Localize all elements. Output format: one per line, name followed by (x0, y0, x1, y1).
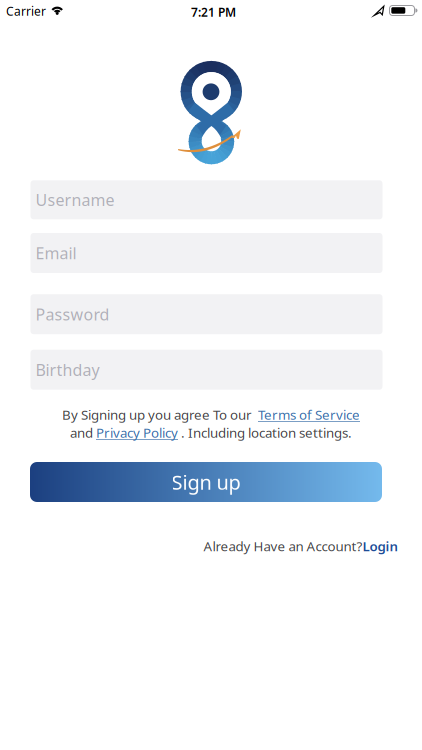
staticText: Login (362, 537, 398, 555)
button[interactable]: Terms of Service (258, 406, 360, 423)
button[interactable]: Birthday (30, 350, 382, 390)
button[interactable]: Privacy Policy (96, 424, 178, 441)
button[interactable]: Login (362, 537, 398, 555)
staticText: Privacy Policy (96, 424, 178, 441)
button[interactable]: Email (30, 233, 382, 273)
staticText: and (70, 424, 96, 441)
button[interactable]: Username (30, 180, 382, 219)
staticText: Already Have an Account? (203, 537, 362, 555)
staticText: Email (35, 242, 76, 264)
button[interactable]: Password (30, 294, 382, 334)
staticText: Password (35, 304, 109, 325)
staticText: Terms of Service (258, 406, 360, 423)
staticText: Username (35, 189, 114, 210)
button[interactable]: Sign up (30, 462, 382, 502)
staticText: By Signing up you agree To our (62, 406, 258, 423)
staticText: Birthday (35, 359, 99, 380)
staticText: . Including location settings. (178, 424, 352, 441)
staticText: Carrier (6, 3, 46, 19)
staticText: Sign up (171, 469, 240, 495)
staticText: 7:21 PM (191, 4, 236, 20)
